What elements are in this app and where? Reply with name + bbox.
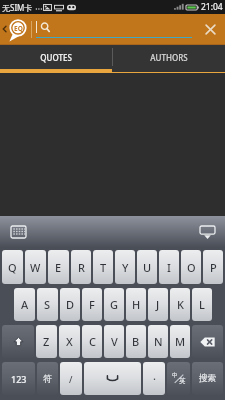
button[interactable]: 搜索 [192,362,223,395]
button[interactable]: L [192,288,212,321]
button[interactable] [32,14,195,44]
staticText: S [44,297,51,312]
staticText: D [66,297,75,312]
staticText: Q [8,260,17,275]
button[interactable]: 符 [37,362,58,395]
button[interactable]: H [126,288,146,321]
button[interactable]: Switch input method [5,220,31,244]
staticText: W [30,260,41,275]
button[interactable]: S [37,288,58,321]
staticText: E [55,260,62,275]
staticText: / [69,373,73,385]
staticText: 中 [172,372,178,379]
button[interactable]: X [59,325,80,358]
staticText: Y [122,260,129,275]
staticText: AUTHORS [150,52,188,63]
staticText: K [177,297,184,312]
staticText: 21:04 [201,1,223,13]
staticText: 无SIM卡 [2,2,33,13]
button[interactable]: P [203,250,223,284]
button[interactable]: · [143,362,165,395]
button[interactable]: Navigate up [0,14,31,44]
staticText: X [66,334,73,349]
button[interactable]: V [104,325,124,358]
button[interactable]: Clear search [195,14,225,44]
staticText: 123 [11,373,27,385]
staticText: J [156,297,160,312]
button[interactable]: / [60,362,82,395]
staticText: L [199,297,205,312]
button[interactable]: N [148,325,168,358]
staticText: H [132,297,141,312]
button[interactable]: F [82,288,102,321]
staticText: QUOTES [40,52,72,63]
button[interactable]: D [60,288,80,321]
button[interactable]: Z [36,325,57,358]
button[interactable]: Space [84,362,141,395]
staticText: R [78,260,85,275]
staticText: M [175,334,186,349]
staticText: Z [43,334,50,349]
staticText: 符 [43,373,52,384]
button[interactable]: Chinese / English [167,362,190,395]
button[interactable]: B [126,325,146,358]
staticText: T [100,260,107,275]
button[interactable]: QUOTES [0,45,112,69]
button[interactable]: G [104,288,124,321]
staticText: A [21,297,29,312]
button[interactable]: AUTHORS [113,45,225,69]
button[interactable]: T [93,250,113,284]
button[interactable]: C [82,325,102,358]
button[interactable]: Hide keyboard [194,220,220,244]
staticText: 搜索 [199,373,216,384]
staticText: O [187,260,196,275]
button[interactable]: I [159,250,179,284]
button[interactable]: J [148,288,168,321]
button[interactable]: U [137,250,157,284]
button[interactable]: Y [115,250,135,284]
button[interactable]: W [25,250,46,284]
button[interactable]: O [181,250,201,284]
staticText: C [89,334,96,349]
button[interactable]: K [170,288,190,321]
button[interactable]: Shift [2,325,34,358]
button[interactable]: R [71,250,91,284]
button[interactable]: 123 [2,362,35,395]
staticText: · [153,371,156,386]
button[interactable]: E [48,250,69,284]
staticText: B [132,334,140,349]
staticText: P [210,260,217,275]
button[interactable]: Backspace [192,325,223,358]
staticText: G [110,297,118,312]
staticText: U [143,260,152,275]
staticText: I [167,260,171,275]
staticText: N [154,334,163,349]
button[interactable]: M [170,325,190,358]
button[interactable]: Q [2,250,23,284]
staticText: EQ [14,24,23,33]
button[interactable]: A [14,288,35,321]
staticText: 英 [179,377,186,385]
staticText: F [89,297,95,312]
staticText: V [111,334,118,349]
